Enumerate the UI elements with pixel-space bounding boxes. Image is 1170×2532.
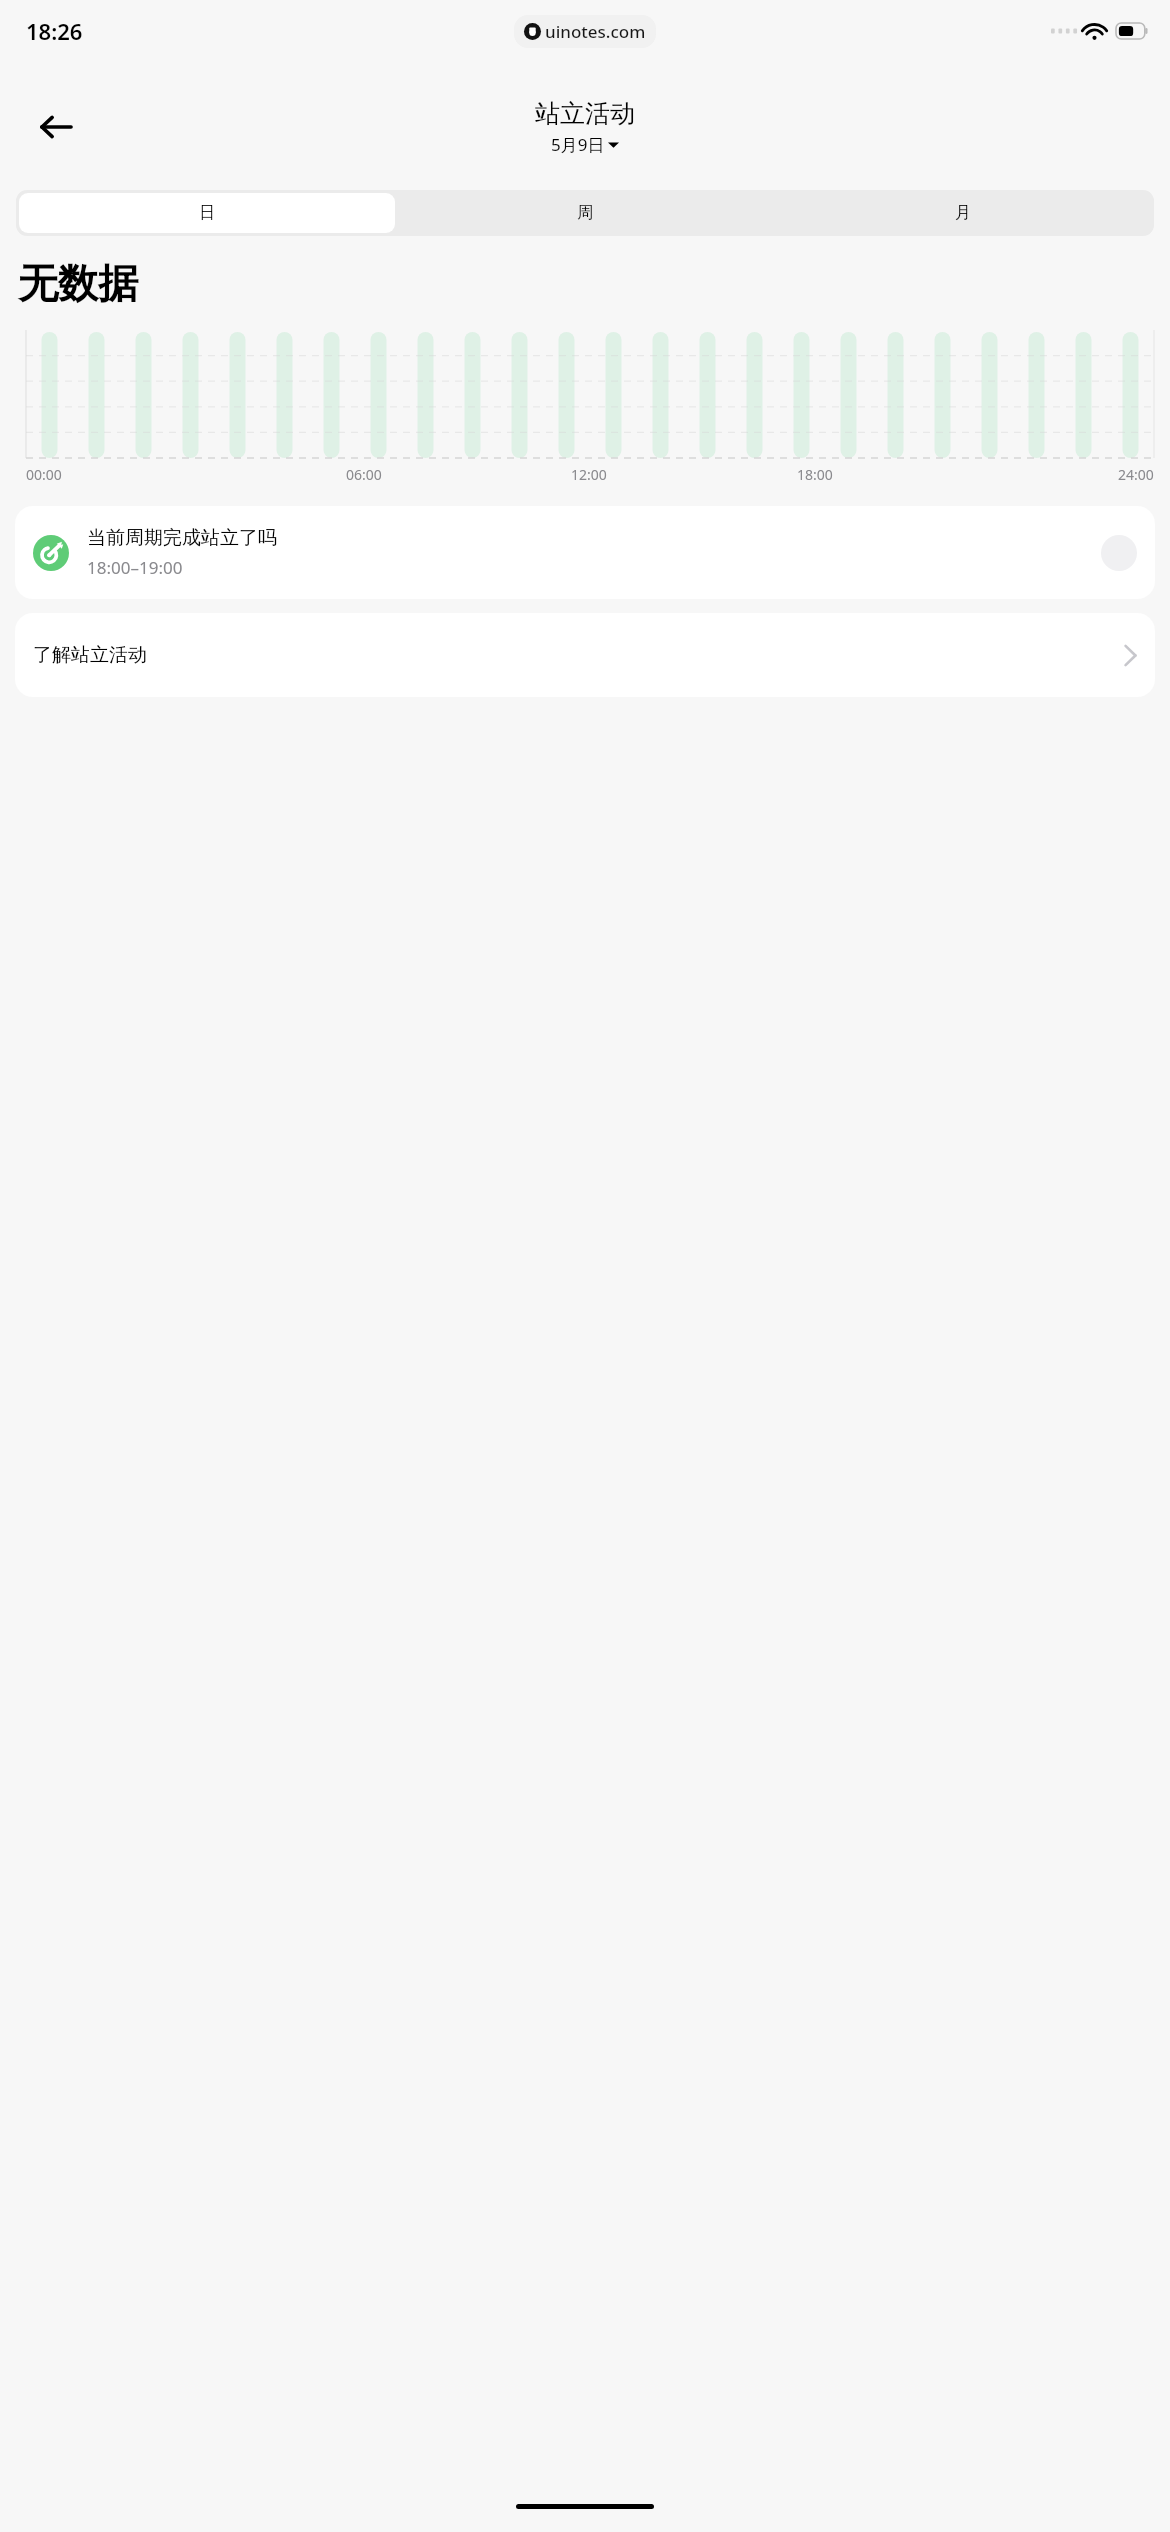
staticText: 00:00 xyxy=(26,465,62,484)
staticText: 当前周期完成站立了吗 xyxy=(87,526,277,550)
staticText: 无数据 xyxy=(18,258,138,308)
staticText: 18:00 xyxy=(797,465,833,484)
button[interactable]: Toggle completion xyxy=(1101,535,1137,571)
staticText: 24:00 xyxy=(1118,465,1154,484)
staticText: 日 xyxy=(199,203,215,223)
button[interactable]: 日 xyxy=(19,193,395,233)
button[interactable]: Back xyxy=(28,99,84,155)
staticText: 06:00 xyxy=(346,465,382,484)
staticText: 了解站立活动 xyxy=(33,643,1124,667)
staticText: 站立活动 xyxy=(535,98,635,129)
staticText: 周 xyxy=(577,203,593,223)
staticText: 18:00–19:00 xyxy=(87,556,183,579)
staticText: uinotes.com xyxy=(545,20,646,43)
button[interactable]: 当前周期完成站立了吗 xyxy=(15,506,1155,599)
button[interactable]: 了解站立活动 xyxy=(15,613,1155,697)
staticText: 5月9日 xyxy=(551,133,605,156)
staticText: 18:26 xyxy=(26,16,83,46)
button[interactable]: 周 xyxy=(397,193,773,233)
staticText: 月 xyxy=(955,203,971,223)
button[interactable]: 5月9日 xyxy=(551,133,619,156)
staticText: 12:00 xyxy=(571,465,607,484)
button[interactable]: 月 xyxy=(775,193,1151,233)
